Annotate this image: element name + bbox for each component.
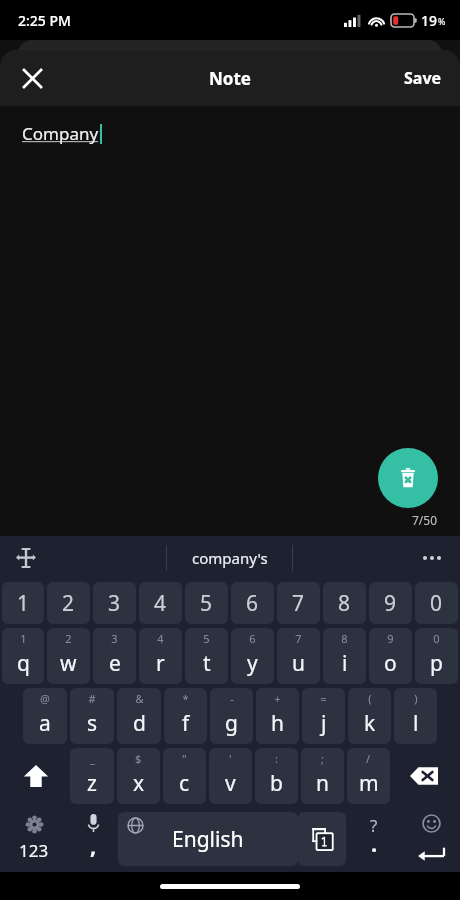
- button[interactable]: Backspace: [390, 746, 458, 806]
- staticText: @: [40, 691, 50, 706]
- button[interactable]: 0: [415, 628, 458, 684]
- staticText: /: [366, 751, 371, 766]
- button[interactable]: Switch layout: [298, 812, 346, 866]
- button[interactable]: _: [70, 748, 114, 804]
- staticText: 4: [157, 631, 164, 646]
- button[interactable]: ;: [301, 748, 344, 804]
- button[interactable]: 9: [369, 628, 412, 684]
- button[interactable]: ?: [346, 806, 402, 872]
- button[interactable]: 8: [323, 628, 366, 684]
- button[interactable]: 3: [93, 628, 136, 684]
- button[interactable]: ): [394, 688, 437, 744]
- button[interactable]: 9: [369, 582, 412, 624]
- button[interactable]: 1: [2, 628, 44, 684]
- button[interactable]: /: [347, 748, 390, 804]
- staticText: ,: [90, 830, 97, 860]
- staticText: m: [359, 769, 379, 798]
- button[interactable]: Save: [390, 57, 456, 99]
- button[interactable]: Move cursor: [4, 536, 48, 580]
- staticText: 2: [65, 631, 72, 646]
- staticText: -: [230, 691, 234, 706]
- button[interactable]: More options: [410, 536, 454, 580]
- button[interactable]: Shift: [2, 746, 70, 806]
- button[interactable]: Voice input: [68, 806, 118, 872]
- staticText: Company: [22, 122, 99, 145]
- staticText: 5: [200, 589, 213, 618]
- button[interactable]: 1: [2, 582, 44, 624]
- button[interactable]: &: [117, 688, 161, 744]
- staticText: 1: [20, 631, 27, 646]
- button[interactable]: 2: [47, 628, 90, 684]
- button[interactable]: *: [164, 688, 207, 744]
- staticText: 9: [387, 631, 394, 646]
- button[interactable]: (: [348, 688, 391, 744]
- button[interactable]: :: [255, 748, 298, 804]
- staticText: 123: [19, 839, 49, 862]
- staticText: 8: [341, 631, 348, 646]
- staticText: 0: [433, 631, 440, 646]
- staticText: x: [133, 769, 145, 798]
- staticText: $: [135, 751, 142, 766]
- staticText: _: [90, 751, 95, 766]
- button[interactable]: 7: [277, 628, 320, 684]
- button[interactable]: Space, English: [118, 812, 298, 866]
- staticText: k: [364, 709, 376, 738]
- staticText: company's: [192, 548, 268, 568]
- button[interactable]: company's: [184, 540, 276, 576]
- staticText: a: [39, 709, 51, 738]
- button[interactable]: 2: [47, 582, 90, 624]
- button[interactable]: Delete note: [378, 448, 438, 508]
- button[interactable]: 6: [231, 628, 274, 684]
- button[interactable]: 0: [415, 582, 458, 624]
- button[interactable]: +: [256, 688, 299, 744]
- staticText: Save: [404, 67, 442, 89]
- staticText: u: [292, 649, 305, 678]
- staticText: 1: [17, 589, 30, 618]
- button[interactable]: 4: [139, 628, 182, 684]
- staticText: ': [229, 751, 232, 766]
- staticText: t: [203, 649, 211, 678]
- button[interactable]: $: [117, 748, 160, 804]
- button[interactable]: =: [302, 688, 345, 744]
- staticText: %: [438, 15, 446, 27]
- button[interactable]: 6: [231, 582, 274, 624]
- staticText: 7: [295, 631, 302, 646]
- button[interactable]: ": [163, 748, 206, 804]
- staticText: ?: [370, 814, 378, 837]
- button[interactable]: 7: [277, 582, 320, 624]
- staticText: #: [88, 691, 96, 706]
- button[interactable]: 5: [185, 628, 228, 684]
- staticText: 7/50: [412, 512, 438, 528]
- staticText: 19: [421, 11, 438, 30]
- staticText: v: [225, 769, 236, 798]
- staticText: f: [182, 709, 190, 738]
- staticText: English: [172, 825, 244, 854]
- staticText: 2: [62, 589, 75, 618]
- staticText: 6: [246, 589, 259, 618]
- staticText: .: [371, 828, 378, 858]
- button[interactable]: 3: [93, 582, 136, 624]
- button[interactable]: Close: [8, 54, 56, 102]
- staticText: n: [316, 769, 329, 798]
- staticText: 0: [430, 589, 443, 618]
- button[interactable]: 5: [185, 582, 228, 624]
- staticText: e: [109, 649, 121, 678]
- button[interactable]: Keyboard settings: [0, 806, 68, 872]
- button[interactable]: Enter: [402, 806, 460, 872]
- staticText: j: [321, 709, 327, 738]
- staticText: c: [179, 769, 190, 798]
- button[interactable]: #: [70, 688, 114, 744]
- button[interactable]: 8: [323, 582, 366, 624]
- staticText: +: [274, 691, 281, 706]
- button[interactable]: -: [210, 688, 253, 744]
- staticText: 2:25 PM: [18, 11, 71, 30]
- staticText: p: [430, 649, 443, 678]
- button[interactable]: ': [209, 748, 252, 804]
- staticText: :: [275, 751, 278, 766]
- button[interactable]: @: [23, 688, 67, 744]
- staticText: (: [368, 691, 372, 706]
- staticText: 4: [154, 589, 167, 618]
- staticText: 3: [108, 589, 121, 618]
- button[interactable]: 4: [139, 582, 182, 624]
- staticText: z: [87, 769, 97, 798]
